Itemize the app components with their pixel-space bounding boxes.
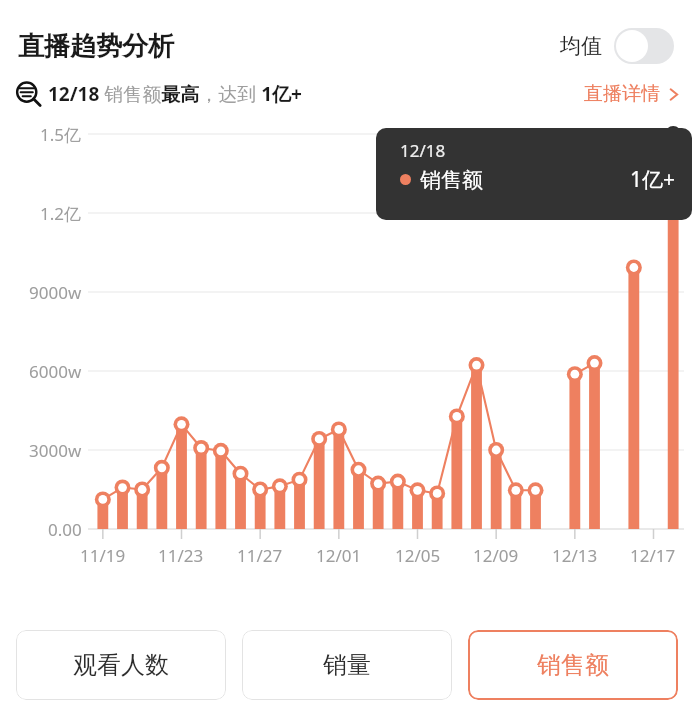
staticText: 销量 [323,650,371,680]
other: Average toggle, off [614,28,674,64]
staticText: 12/13 [552,544,598,567]
button[interactable]: 销售额 [468,630,678,700]
button[interactable]: 销量 [242,630,452,700]
button[interactable]: 直播详情 [584,78,680,110]
staticText: 6000w [29,360,82,383]
staticText: 1亿+ [630,165,676,194]
button[interactable]: 观看人数 [16,630,226,700]
staticText: 11/27 [237,544,283,567]
staticText: 销售额 [537,650,609,680]
staticText: 11/19 [80,544,126,567]
staticText: 直播趋势分析 [18,30,174,63]
staticText: 3000w [29,439,82,462]
staticText: 9000w [29,281,82,304]
staticText: 1.5亿 [40,123,82,146]
staticText: 观看人数 [73,650,169,680]
staticText: 销售额 [420,167,483,193]
button[interactable]: 12/18 [376,128,692,220]
staticText: 12/17 [630,544,676,567]
staticText: 0.00 [48,518,82,541]
staticText: 12/01 [316,544,362,567]
staticText: 均值 [560,33,602,59]
button[interactable]: 均值 [556,24,678,68]
staticText: 12/05 [395,544,441,567]
staticText: 1.2亿 [40,202,82,225]
staticText: 12/18 销售额最高，达到 1亿+ [48,81,302,107]
staticText: 12/09 [473,544,519,567]
staticText: 直播详情 [584,82,660,106]
staticText: 11/23 [158,544,204,567]
staticText: 12/18 [400,139,446,162]
